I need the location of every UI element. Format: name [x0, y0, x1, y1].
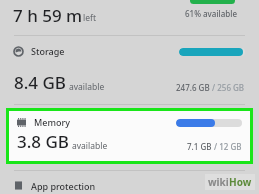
- staticText: available: [69, 81, 105, 93]
- staticText: 3.8 GB: [17, 130, 69, 153]
- staticText: available: [72, 140, 108, 152]
- staticText: 7 h 59 m: [13, 4, 83, 27]
- staticText: Storage: [31, 45, 65, 57]
- staticText: 7.1 GB: [187, 141, 212, 152]
- staticText: left: [83, 12, 96, 24]
- button[interactable]: Memory: [9, 111, 250, 161]
- staticText: App protection: [31, 180, 96, 192]
- staticText: How: [229, 175, 252, 189]
- staticText: 247.6 GB: [176, 82, 210, 93]
- button[interactable]: 7 h 59 m: [0, 0, 259, 40]
- other: App protection: [14, 181, 23, 190]
- staticText: wiki: [208, 175, 229, 189]
- staticText: / 12 GB: [212, 141, 242, 152]
- button[interactable]: App protection: [0, 177, 259, 194]
- staticText: 8.4 GB: [14, 71, 66, 94]
- staticText: / 256 GB: [210, 82, 245, 93]
- staticText: 61% available: [185, 8, 238, 19]
- staticText: Memory: [34, 116, 71, 128]
- button[interactable]: Storage: [0, 40, 259, 102]
